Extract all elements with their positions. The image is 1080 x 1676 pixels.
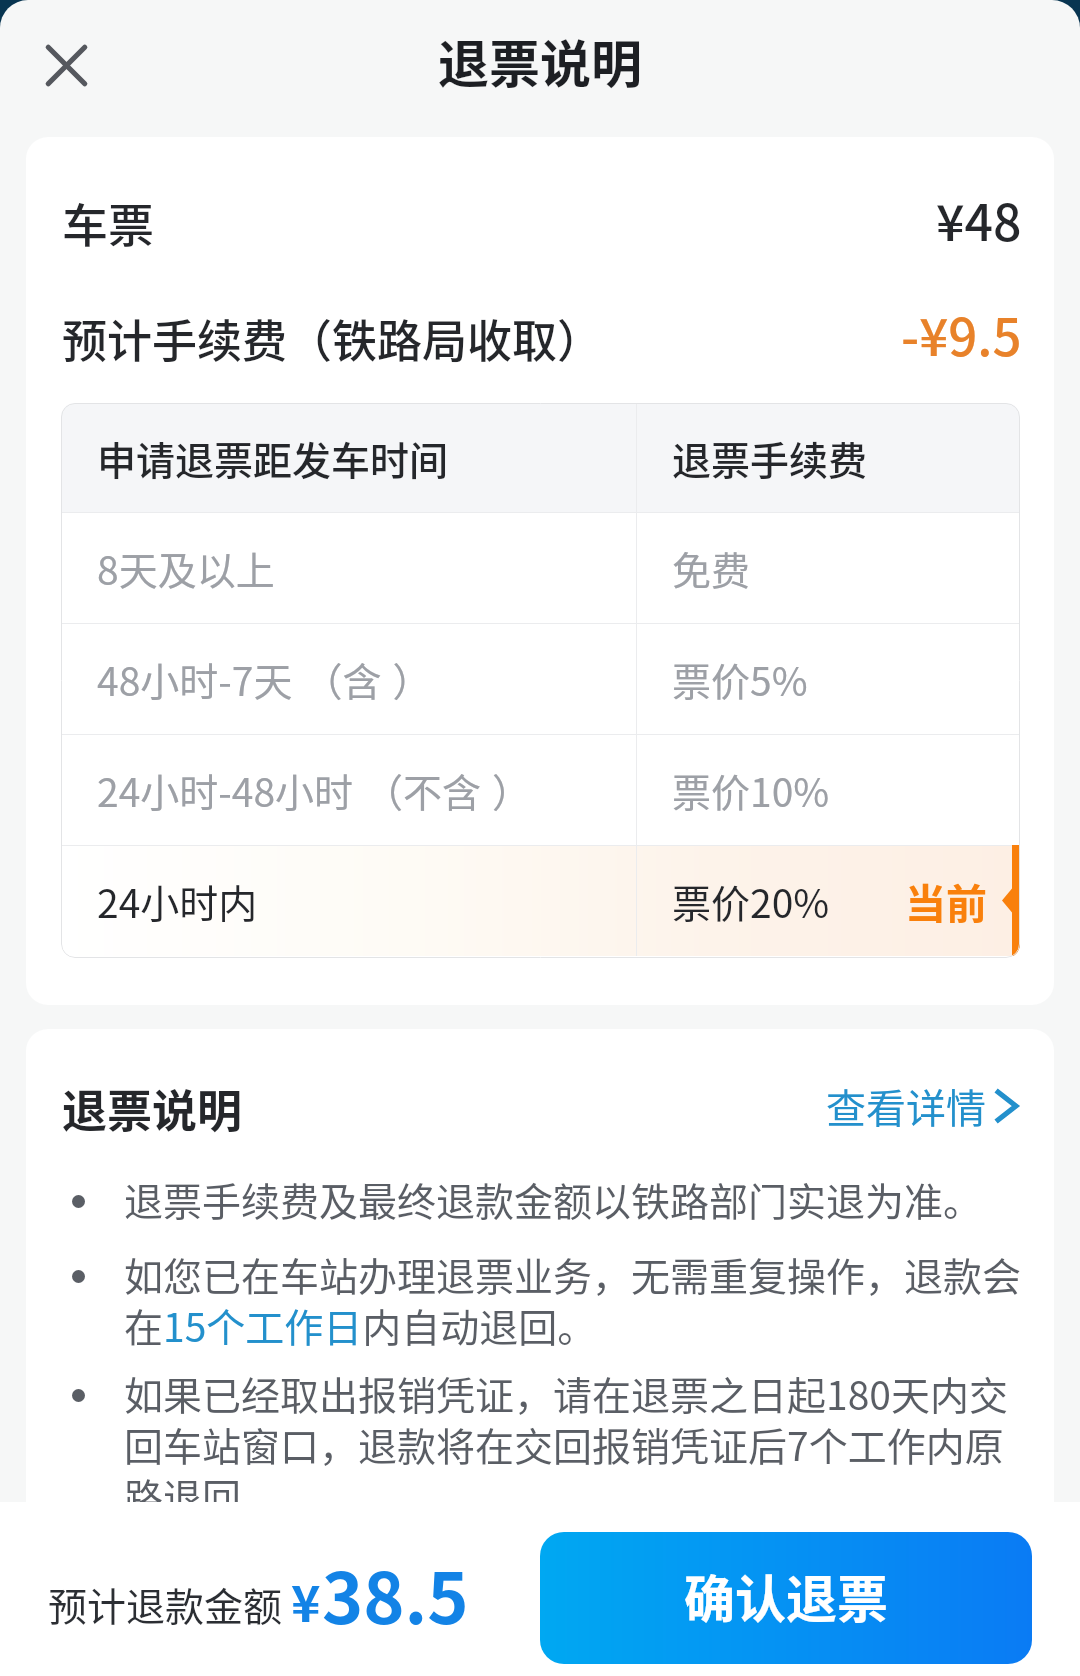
staticText: ¥48 (936, 183, 1022, 255)
staticText: 如您已在车站办理退票业务，无需重复操作，退款会在15个工作日内自动退回。 (124, 1246, 1026, 1353)
staticText: 退票手续费及最终退款金额以铁路部门实退为准。 (124, 1171, 1026, 1227)
staticText: 退票手续费 (672, 430, 868, 486)
staticText: 48小时-7天（含） (97, 651, 432, 707)
staticText: ¥ (291, 1564, 321, 1636)
staticText: 票价20% (672, 873, 830, 929)
button[interactable]: Close (29, 28, 103, 102)
staticText: 预计手续费（铁路局收取） (62, 306, 603, 371)
staticText: 如果已经取出报销凭证，请在退票之日起180天内交回车站窗口，退款将在交回报销凭证… (124, 1365, 1026, 1523)
button[interactable]: 查看详情 (826, 1077, 1022, 1135)
staticText: 申请退票距发车时间 (97, 430, 449, 486)
staticText: 票价5% (672, 651, 808, 707)
staticText: 8天及以上 (97, 540, 275, 596)
staticText: -¥9.5 (901, 297, 1022, 371)
staticText: 24小时内 (97, 873, 258, 929)
staticText: 退票说明 (438, 24, 643, 98)
staticText: 票价10% (672, 762, 830, 818)
staticText: 确认退票 (684, 1559, 889, 1633)
staticText: 退票说明 (62, 1076, 243, 1141)
staticText: 查看详情 (826, 1077, 986, 1135)
staticText: 免费 (672, 540, 751, 596)
staticText: 24小时-48小时（不含） (97, 762, 532, 818)
staticText: 当前 (905, 871, 987, 930)
button[interactable]: 确认退票 (540, 1532, 1032, 1664)
staticText: 38.5 (322, 1543, 469, 1644)
staticText: 车票 (62, 189, 154, 256)
staticText: 预计退款金额 (48, 1576, 283, 1632)
